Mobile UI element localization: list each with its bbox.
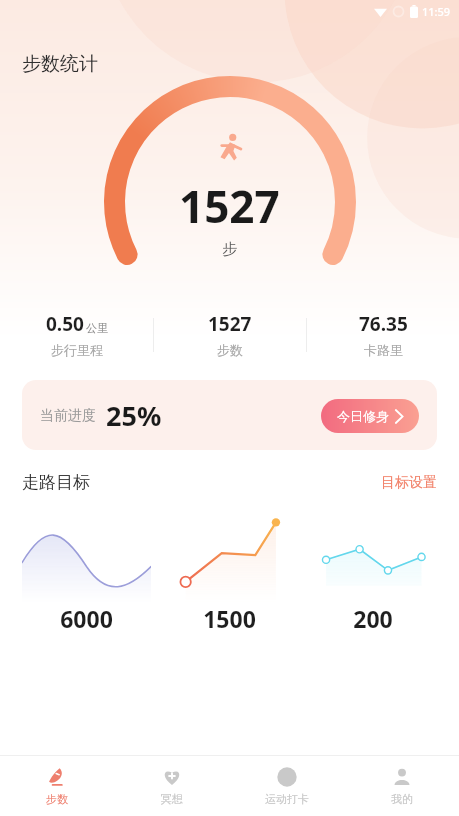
staticText: 1500 xyxy=(203,603,256,634)
button[interactable]: 6000 xyxy=(22,507,151,652)
button[interactable]: 我的 xyxy=(344,755,459,816)
button[interactable]: 目标设置 xyxy=(381,474,437,492)
staticText: 1527 xyxy=(179,176,280,236)
button[interactable]: 步数 xyxy=(0,755,114,816)
staticText: 11:59 xyxy=(422,4,451,19)
staticText: 200 xyxy=(353,603,393,634)
staticText: 公里 xyxy=(86,321,108,335)
button[interactable]: 运动打卡 xyxy=(229,755,344,816)
staticText: 1527 xyxy=(208,311,252,337)
staticText: 我的 xyxy=(391,792,413,806)
staticText: 冥想 xyxy=(161,792,183,806)
staticText: 76.35 xyxy=(359,311,408,337)
staticText: 目标设置 xyxy=(381,474,437,492)
button[interactable]: 200 xyxy=(308,507,437,652)
staticText: 卡路里 xyxy=(364,342,403,358)
button[interactable]: 冥想 xyxy=(114,755,229,816)
staticText: 走路目标 xyxy=(22,472,90,493)
staticText: 步 xyxy=(222,240,237,259)
staticText: 今日修身 xyxy=(337,408,389,424)
button[interactable]: 1527 xyxy=(154,311,306,358)
button[interactable]: 1500 xyxy=(165,507,294,652)
staticText: 运动打卡 xyxy=(265,792,309,806)
staticText: 6000 xyxy=(60,603,113,634)
staticText: 步行里程 xyxy=(51,342,103,358)
button[interactable]: 0.50 xyxy=(0,311,153,358)
staticText: 0.50 xyxy=(46,311,84,337)
staticText: 25% xyxy=(106,397,162,434)
other: Running xyxy=(213,132,247,166)
staticText: 当前进度 xyxy=(40,407,96,425)
button[interactable]: 76.35 xyxy=(307,311,459,358)
staticText: 步数统计 xyxy=(22,52,98,76)
button[interactable]: 当前进度 xyxy=(22,380,437,450)
staticText: 步数 xyxy=(217,342,243,358)
button[interactable]: 今日修身 xyxy=(321,399,419,433)
staticText: 步数 xyxy=(46,792,68,806)
